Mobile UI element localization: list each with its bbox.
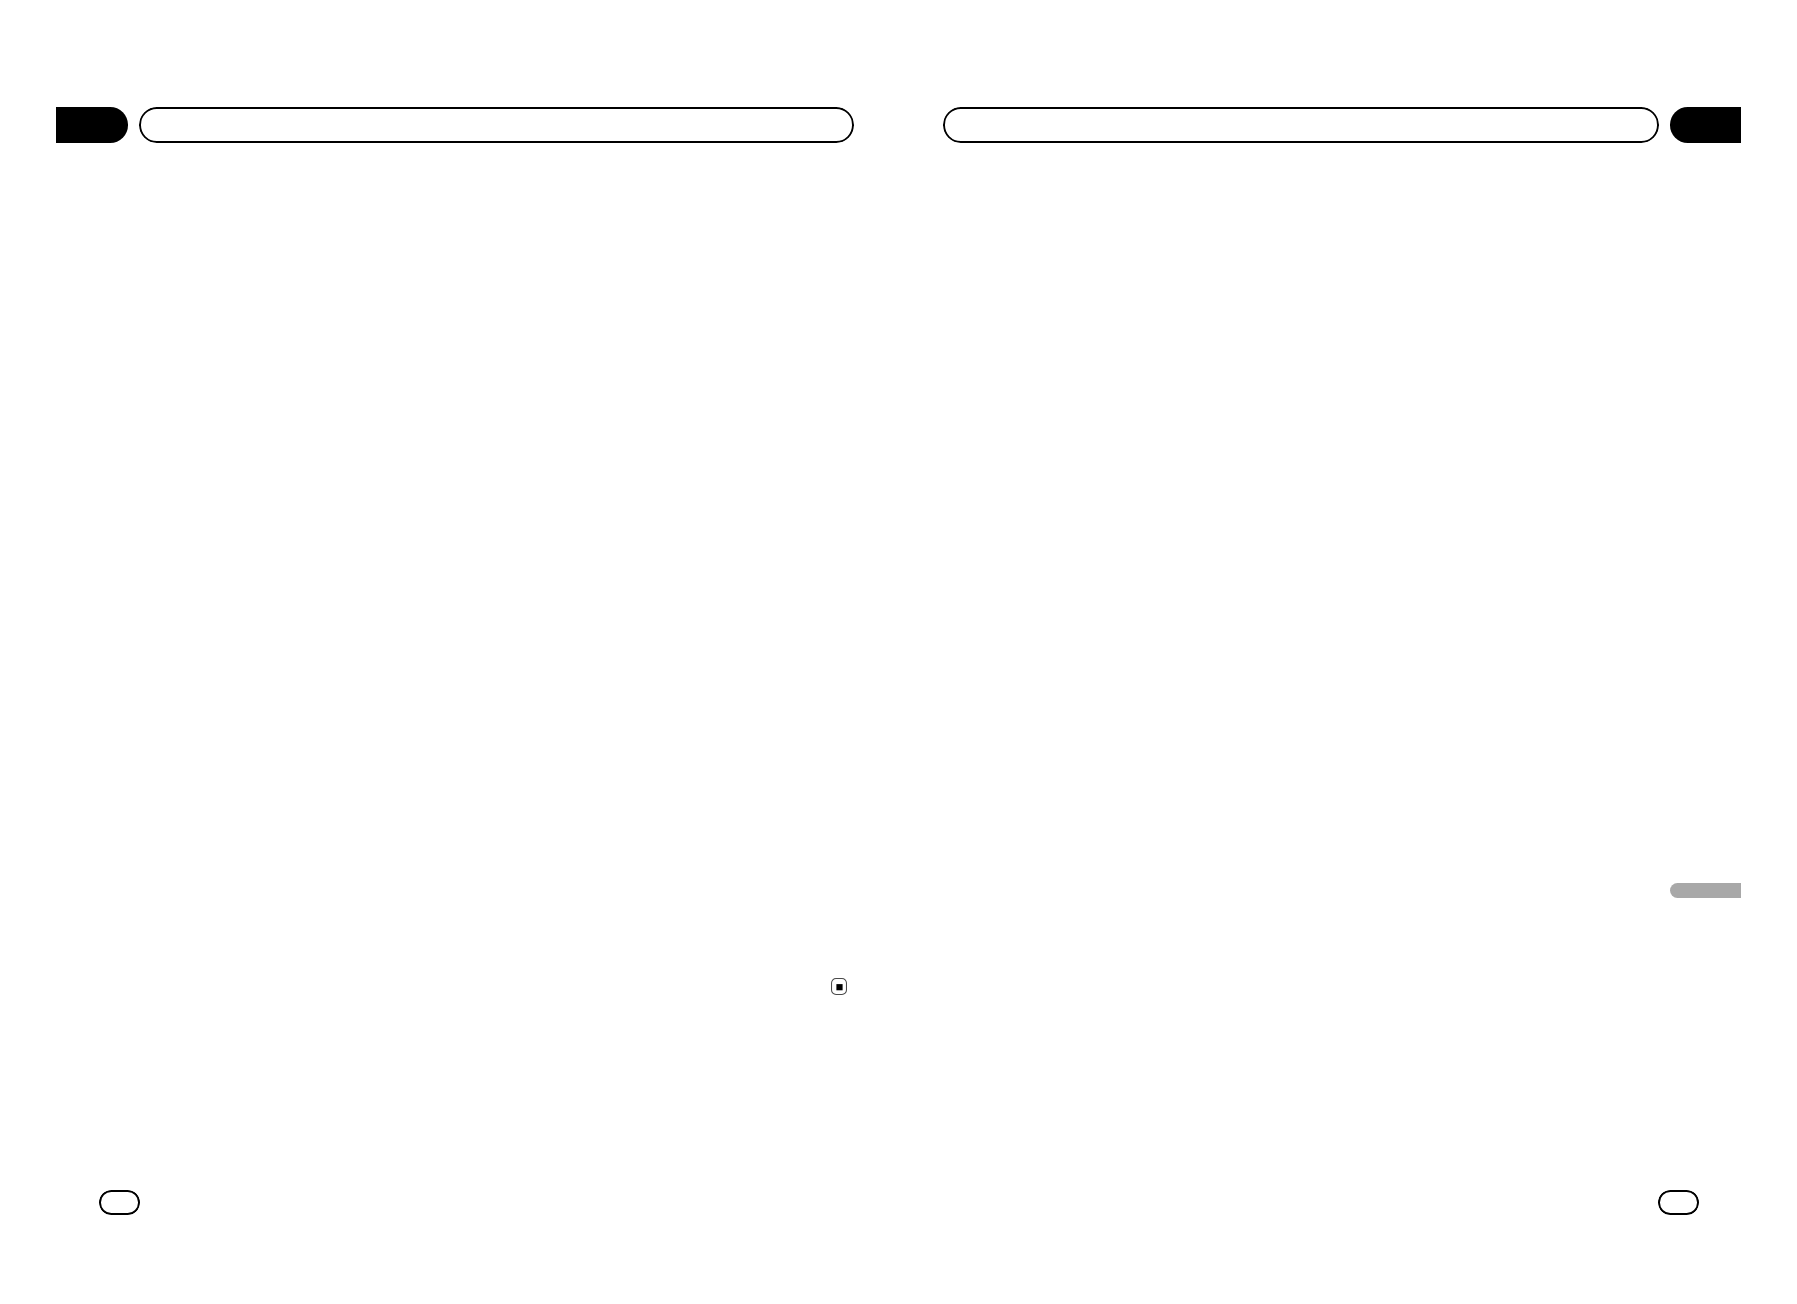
button[interactable]: Previous page	[99, 1190, 140, 1215]
button[interactable]: Next page	[1658, 1190, 1699, 1215]
button[interactable]: Stop	[831, 978, 847, 995]
button[interactable]: Section title, left page	[139, 107, 854, 143]
button[interactable]: Chapter marker	[1670, 883, 1741, 898]
button[interactable]: More options	[1670, 107, 1741, 143]
button[interactable]: Section title, right page	[943, 107, 1659, 143]
button[interactable]: Navigation menu	[56, 107, 128, 143]
